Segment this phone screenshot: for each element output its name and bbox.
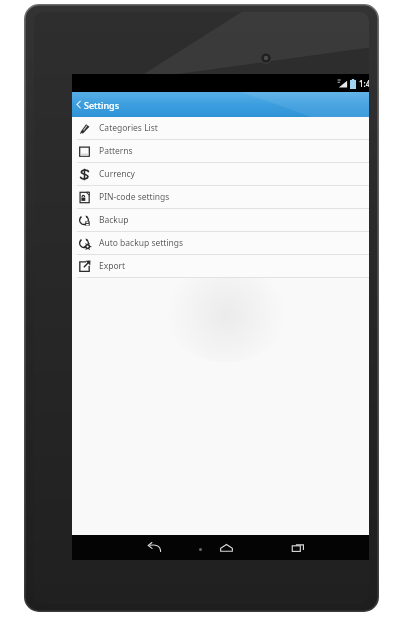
button[interactable]: Export xyxy=(72,255,369,277)
button[interactable]: Currency xyxy=(72,163,369,185)
staticText: Categories List xyxy=(99,122,158,134)
staticText: Currency xyxy=(99,168,135,180)
button[interactable]: Auto backup settings xyxy=(72,232,369,254)
button[interactable]: Backup xyxy=(72,209,369,231)
staticText: PIN-code settings xyxy=(99,191,170,203)
staticText: Backup xyxy=(99,214,129,226)
button[interactable]: Recent apps xyxy=(262,535,334,560)
button[interactable]: Patterns xyxy=(72,140,369,162)
button[interactable]: PIN-code settings xyxy=(72,186,369,208)
button[interactable]: Settings xyxy=(72,92,128,117)
button[interactable]: Home xyxy=(190,535,262,560)
staticText: 1:44 xyxy=(359,78,369,89)
button[interactable]: Categories List xyxy=(72,117,369,139)
staticText: Export xyxy=(99,260,126,272)
staticText: Patterns xyxy=(99,145,133,157)
staticText: Settings xyxy=(84,99,120,111)
staticText: Auto backup settings xyxy=(99,237,184,249)
button[interactable]: Back xyxy=(118,535,190,560)
